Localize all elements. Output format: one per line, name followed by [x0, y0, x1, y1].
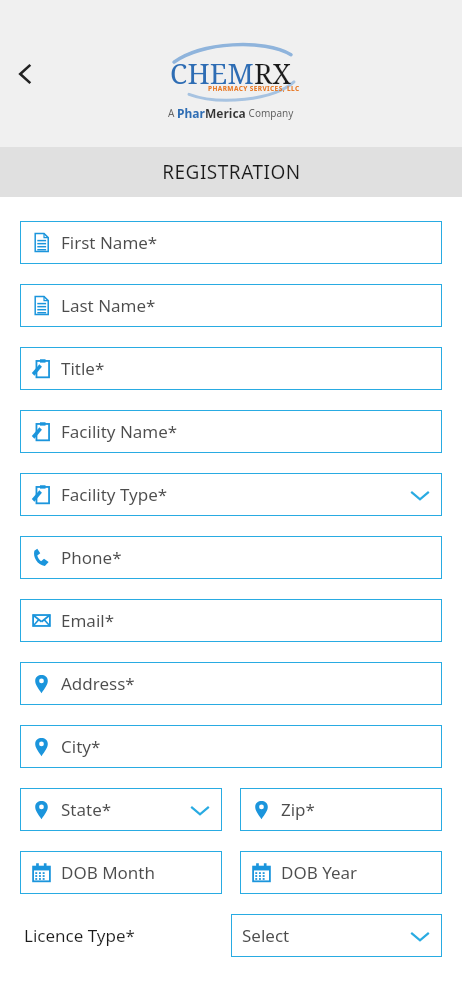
staticText: State* [61, 798, 189, 821]
staticText: Select [242, 924, 409, 947]
button[interactable]: Back [4, 52, 48, 96]
staticText: CHEM [170, 54, 254, 92]
staticText: A [168, 106, 177, 120]
button[interactable]: Phone* [20, 536, 442, 579]
button[interactable]: DOB Year [240, 851, 442, 894]
button[interactable]: City* [20, 725, 442, 768]
staticText: Licence Type* [24, 924, 231, 947]
button[interactable]: DOB Month [20, 851, 222, 894]
staticText: Last Name* [61, 294, 431, 317]
staticText: Facility Type* [61, 483, 409, 506]
button[interactable]: Zip* [240, 788, 442, 831]
staticText: DOB Year [281, 861, 431, 884]
button[interactable]: Facility Name* [20, 410, 442, 453]
staticText: REGISTRATION [162, 159, 301, 185]
button[interactable]: Facility Type* [20, 473, 442, 516]
staticText: Phar [177, 105, 205, 121]
staticText: Title* [61, 357, 431, 380]
staticText: City* [61, 735, 431, 758]
staticText: Zip* [281, 798, 431, 821]
staticText: First Name* [61, 231, 431, 254]
staticText: Phone* [61, 546, 431, 569]
button[interactable]: State* [20, 788, 222, 831]
staticText: PHARMACY SERVICES, LLC [208, 84, 300, 93]
staticText: Address* [61, 672, 431, 695]
button[interactable]: Title* [20, 347, 442, 390]
staticText: DOB Month [61, 861, 211, 884]
button[interactable]: Email* [20, 599, 442, 642]
staticText: Facility Name* [61, 420, 431, 443]
button[interactable]: Address* [20, 662, 442, 705]
staticText: RX [254, 54, 292, 92]
staticText: Merica [205, 105, 246, 121]
staticText: Company [246, 106, 294, 120]
button[interactable]: First Name* [20, 221, 442, 264]
staticText: Email* [61, 609, 431, 632]
button[interactable]: Select [231, 914, 442, 957]
button[interactable]: Last Name* [20, 284, 442, 327]
